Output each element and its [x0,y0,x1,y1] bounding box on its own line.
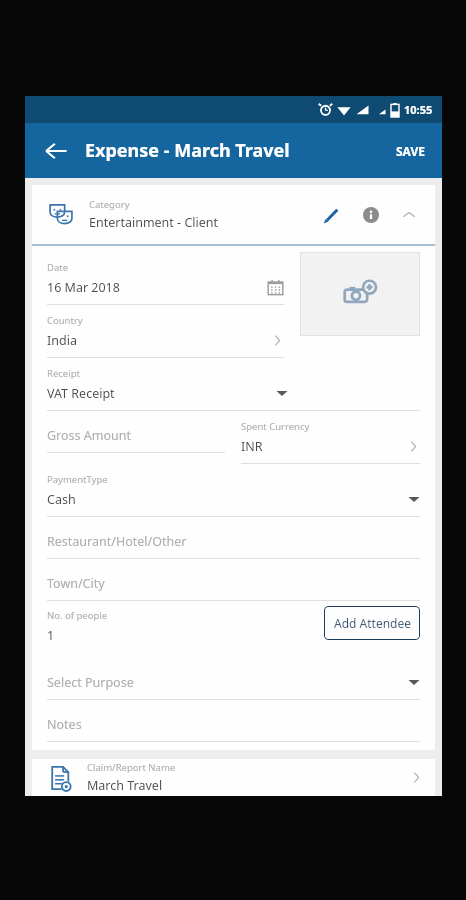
button[interactable]: Category [32,185,435,244]
staticText: Notes [47,716,82,733]
button[interactable]: Edit category [315,199,347,231]
button[interactable]: Collapse section [393,199,425,231]
button[interactable]: Date [47,252,284,305]
staticText: Spent Currency [241,420,310,433]
staticText: Receipt [47,367,80,380]
button[interactable]: Spent Currency [241,411,420,464]
staticText: Claim/Report Name [87,761,176,774]
button[interactable]: Back [37,132,75,170]
staticText: No. of people [47,609,108,622]
staticText: Town/City [47,575,105,592]
staticText: 1 [47,627,55,644]
staticText: 10:55 [404,102,433,117]
staticText: Cash [47,491,76,508]
button[interactable]: Claim/Report Name [32,759,435,796]
button[interactable]: Add Attendee [324,606,420,640]
staticText: INR [241,438,263,455]
staticText: Entertainment - Client [89,214,219,231]
staticText: Restaurant/Hotel/Other [47,533,187,550]
staticText: Date [47,261,69,274]
staticText: Category [89,198,130,211]
button[interactable]: Gross Amount [47,411,225,453]
staticText: Country [47,314,83,327]
staticText: Expense - March Travel [85,138,290,163]
button[interactable]: SAVE [391,136,430,166]
button[interactable]: Restaurant/Hotel/Other [47,517,420,559]
staticText: PaymentType [47,473,108,486]
staticText: Gross Amount [47,427,132,444]
button[interactable]: Country [47,305,284,358]
button[interactable]: Add receipt photo [300,252,420,336]
button[interactable]: Information [355,199,387,231]
staticText: India [47,332,77,349]
staticText: Add Attendee [334,615,411,631]
button[interactable]: PaymentType [47,464,420,517]
staticText: SAVE [396,143,425,159]
staticText: Select Purpose [47,674,134,691]
button[interactable]: Town/City [47,559,420,601]
staticText: 16 Mar 2018 [47,279,120,296]
button[interactable]: Notes [47,700,420,742]
button[interactable]: Select Purpose [47,658,420,700]
staticText: March Travel [87,777,163,794]
button[interactable]: Receipt [47,358,420,411]
staticText: VAT Receipt [47,385,115,402]
